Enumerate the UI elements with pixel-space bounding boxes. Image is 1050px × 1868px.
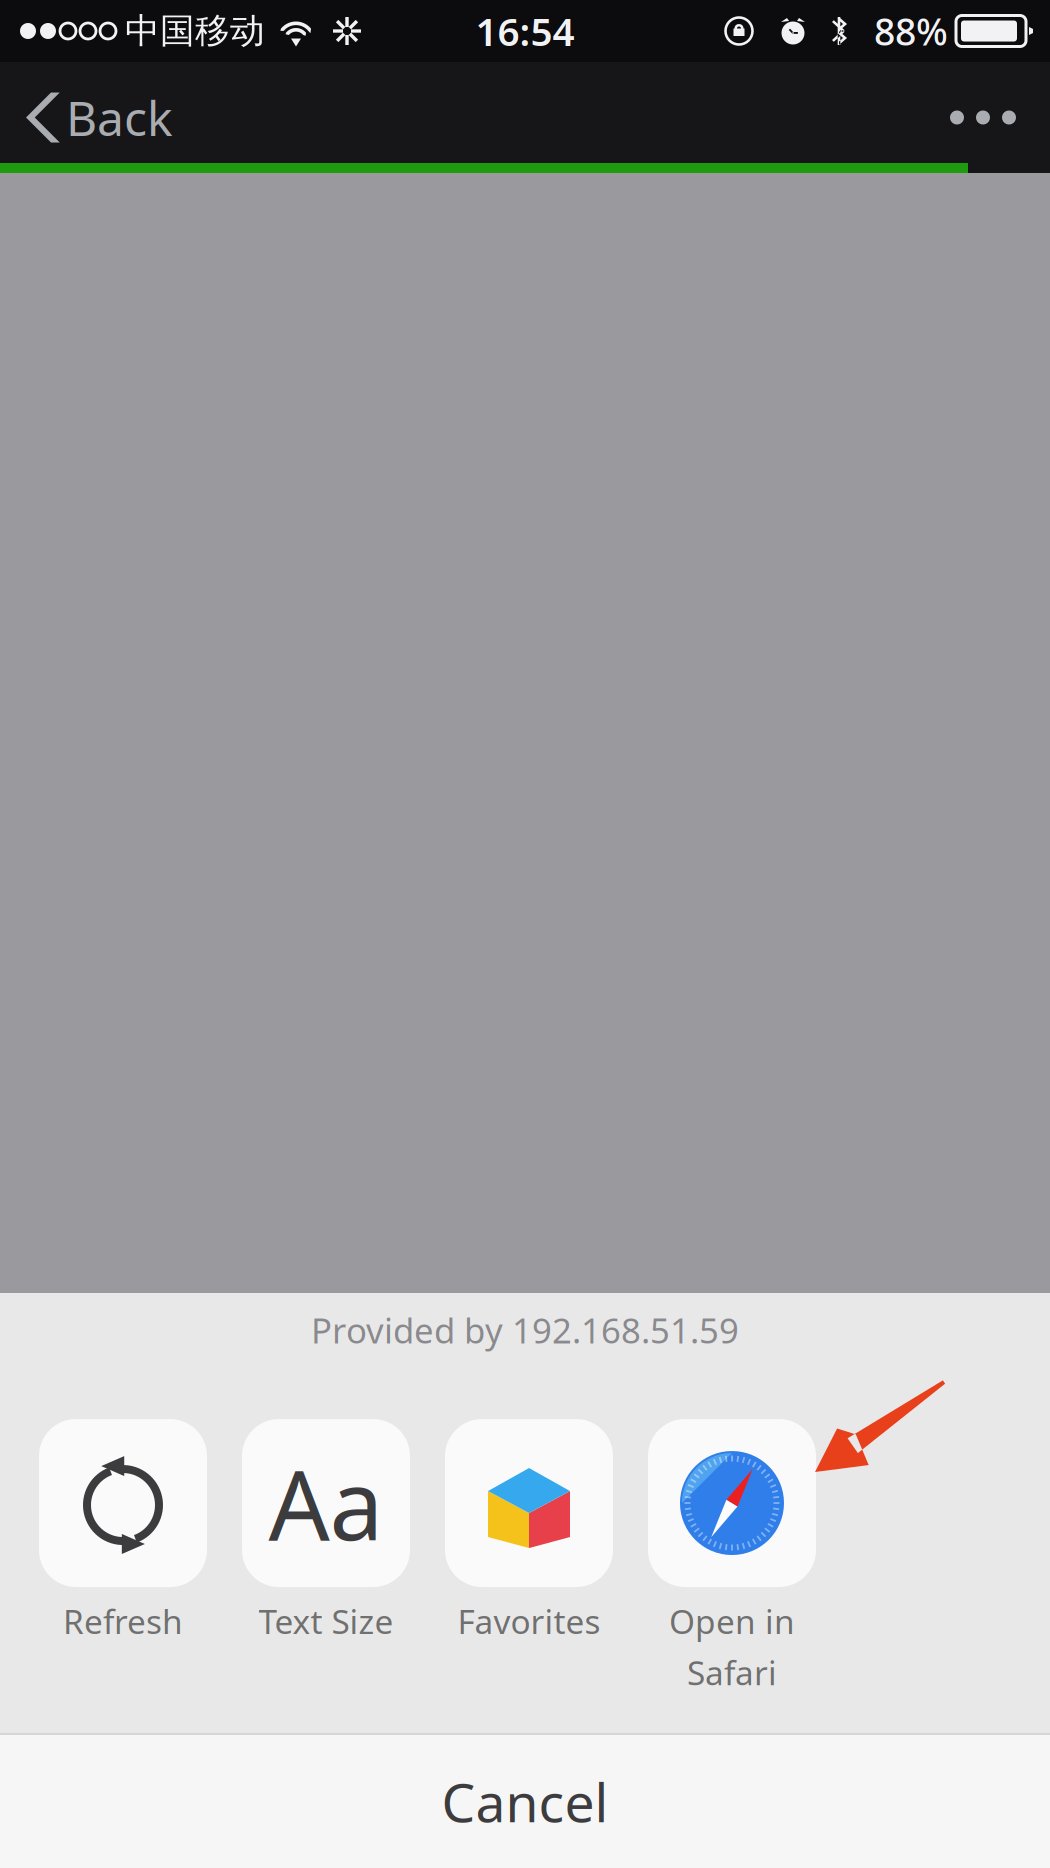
button[interactable]: Favorites — [445, 1419, 613, 1643]
staticText: Text Size — [258, 1599, 393, 1643]
button[interactable]: More — [916, 62, 1050, 173]
button[interactable]: Back — [0, 62, 199, 173]
staticText: Safari — [687, 1650, 777, 1695]
staticText: Provided by 192.168.51.59 — [311, 1307, 739, 1353]
staticText: 88% — [874, 6, 948, 56]
staticText: Favorites — [457, 1599, 600, 1643]
button[interactable]: Open in — [648, 1419, 816, 1694]
staticText: Cancel — [441, 1766, 608, 1837]
staticText: Refresh — [63, 1599, 183, 1643]
button[interactable]: Aa — [242, 1419, 410, 1643]
button[interactable]: Cancel — [0, 1735, 1050, 1868]
staticText: Aa — [268, 1439, 383, 1567]
staticText: Open in — [669, 1599, 795, 1643]
staticText: 中国移动 — [125, 10, 265, 52]
staticText: 16:54 — [475, 5, 574, 57]
button[interactable]: Refresh — [39, 1419, 207, 1643]
staticText: Back — [66, 86, 173, 149]
